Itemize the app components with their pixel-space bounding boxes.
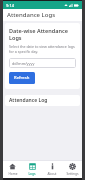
button[interactable]: Refresh [9,72,35,84]
staticText: About [47,172,57,176]
staticText: Select the date to view attendance logs … [9,44,76,54]
button[interactable]: dd/mm/yyyy [9,58,76,68]
staticText: Attendance Log [9,97,48,104]
button[interactable]: Logs [22,161,42,178]
button[interactable]: Home [3,161,22,178]
staticText: dd/mm/yyyy [12,61,35,66]
staticText: 9:14 [6,3,14,8]
button[interactable]: Settings [62,161,82,178]
staticText: Logs [28,172,36,176]
staticText: Attendance Logs [7,11,56,19]
staticText: Date-wise Attendance Logs [9,27,76,41]
staticText: Refresh [14,75,30,81]
button[interactable]: About [42,161,62,178]
staticText: Home [8,172,18,176]
staticText: Settings [66,172,79,176]
